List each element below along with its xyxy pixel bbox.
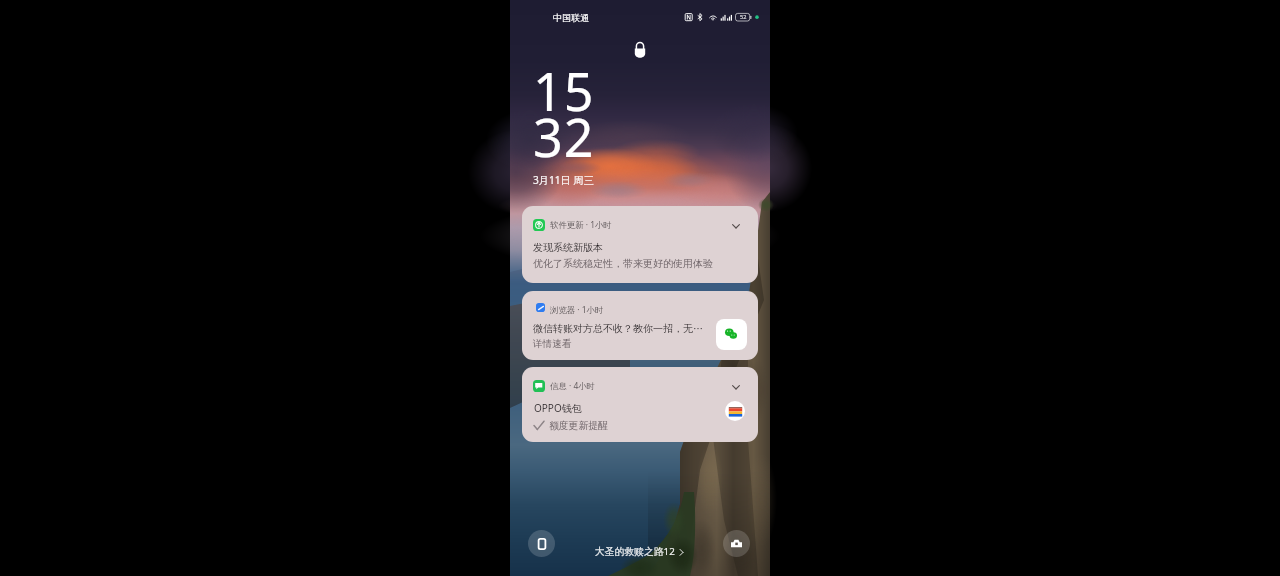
staticText: 大圣的救赎之路12	[595, 545, 675, 558]
staticText: OPPO钱包	[534, 401, 582, 415]
staticText: 3月11日 周三	[533, 173, 594, 187]
other: Locked	[633, 41, 647, 59]
staticText: 信息 · 4小时	[550, 380, 595, 391]
staticText: 32	[533, 101, 595, 172]
button[interactable]: Expand notification	[726, 377, 746, 397]
staticText: 微信转账对方总不收？教你一招，无法拒绝	[533, 322, 709, 335]
staticText: 15	[533, 55, 595, 126]
staticText: 优化了系统稳定性，带来更好的使用体验	[533, 257, 713, 270]
staticText: 额度更新提醒	[549, 420, 608, 432]
button[interactable]: Expand notification	[726, 216, 746, 236]
button[interactable]: Camera	[723, 530, 750, 557]
staticText: 52	[740, 13, 747, 20]
button[interactable]: Wallet	[528, 530, 555, 557]
button[interactable]: 大圣的救赎之路12	[595, 545, 685, 558]
button[interactable]: 浏览器 · 1小时	[522, 291, 758, 360]
button[interactable]: 软件更新 · 1小时	[522, 206, 758, 283]
staticText: 详情速看	[533, 338, 572, 350]
staticText: 软件更新 · 1小时	[550, 219, 612, 230]
button[interactable]: 信息 · 4小时	[522, 367, 758, 442]
staticText: 中国联通	[553, 12, 589, 23]
staticText: 浏览器 · 1小时	[550, 304, 604, 315]
staticText: 发现系统新版本	[533, 241, 603, 254]
